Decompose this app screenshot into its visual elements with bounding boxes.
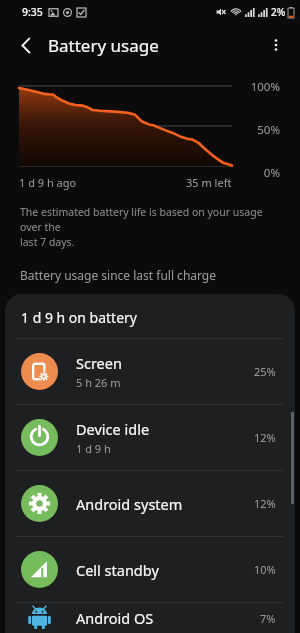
staticText: 10%: [254, 562, 276, 577]
staticText: 50%: [257, 122, 280, 138]
staticText: 1 d 9 h ago: [19, 175, 77, 190]
button[interactable]: Screen: [5, 339, 295, 404]
staticText: Battery usage: [48, 34, 159, 57]
staticText: 2%: [271, 5, 286, 19]
button[interactable]: More options: [258, 27, 294, 63]
button[interactable]: Android system: [5, 471, 295, 536]
staticText: 25%: [254, 364, 276, 379]
button[interactable]: Cell standby: [5, 537, 295, 602]
button[interactable]: Back: [8, 27, 44, 63]
staticText: 0%: [263, 165, 280, 181]
staticText: Device idle: [76, 419, 150, 439]
staticText: 1 d 9 h: [76, 441, 111, 456]
staticText: Android system: [76, 494, 183, 514]
staticText: 1 d 9 h on battery: [21, 308, 137, 327]
staticText: 5 h 26 m: [76, 375, 121, 390]
staticText: Android OS: [76, 608, 154, 628]
staticText: 7%: [260, 611, 276, 626]
staticText: Battery usage since last full charge: [20, 267, 217, 283]
staticText: Cell standby: [76, 560, 159, 580]
button[interactable]: Android OS: [5, 603, 295, 633]
staticText: 9:35: [22, 5, 43, 19]
staticText: 12%: [254, 430, 276, 445]
staticText: Screen: [76, 353, 122, 373]
staticText: 100%: [250, 79, 280, 95]
staticText: 35 m left: [186, 175, 232, 190]
staticText: The estimated battery life is based on y…: [20, 205, 284, 249]
staticText: 12%: [254, 496, 276, 511]
button[interactable]: Device idle: [5, 405, 295, 470]
